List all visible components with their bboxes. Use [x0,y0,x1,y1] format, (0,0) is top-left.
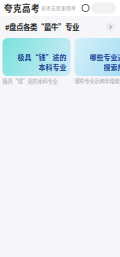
button[interactable]: Search [80,4,91,11]
button[interactable]: #盘点各类“最牛”专业 [0,16,120,38]
staticText: 夸克高考 [4,2,40,14]
staticText: 高考志愿更简单 [40,4,76,11]
staticText: 哪些专业近两年 [89,52,120,62]
staticText: #盘点各类“最牛”专业 [5,22,79,32]
button[interactable]: More [91,2,116,13]
staticText: 极具“钱”途的本科专业 [2,77,57,85]
button[interactable]: 哪些专业近两年 [74,38,120,84]
staticText: 极具“钱”途的 [17,52,66,62]
staticText: 搜索热度高 [103,62,120,72]
staticText: 本科专业 [38,62,66,72]
staticText: 哪些专业近两年搜索热度高 [74,77,120,85]
button[interactable]: 极具“钱”途的 [2,38,70,84]
